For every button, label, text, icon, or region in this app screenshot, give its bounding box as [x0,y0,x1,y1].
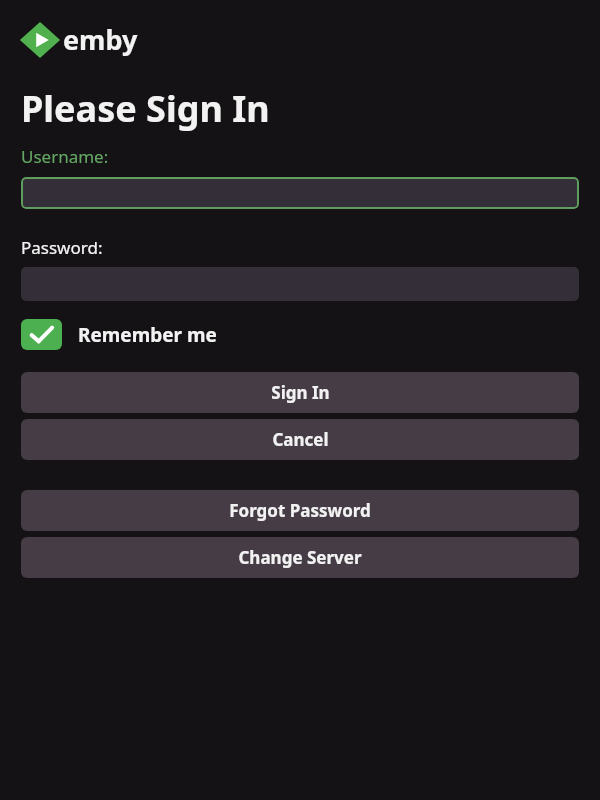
button[interactable]: Change Server [21,537,579,578]
staticText: Remember me [78,322,217,348]
staticText: Change Server [238,546,362,569]
button[interactable]: Username field [21,177,579,209]
staticText: Cancel [272,428,329,451]
button[interactable]: emby [21,21,138,58]
staticText: Sign In [271,381,330,404]
button[interactable]: Cancel [21,419,579,460]
staticText: Password: [21,236,103,259]
button[interactable]: Forgot Password [21,490,579,531]
staticText: emby [63,21,138,58]
button[interactable]: Sign In [21,372,579,413]
staticText: Please Sign In [21,84,270,133]
staticText: Username: [21,145,109,168]
staticText: Forgot Password [229,499,371,522]
button[interactable]: Remember me [21,319,217,350]
